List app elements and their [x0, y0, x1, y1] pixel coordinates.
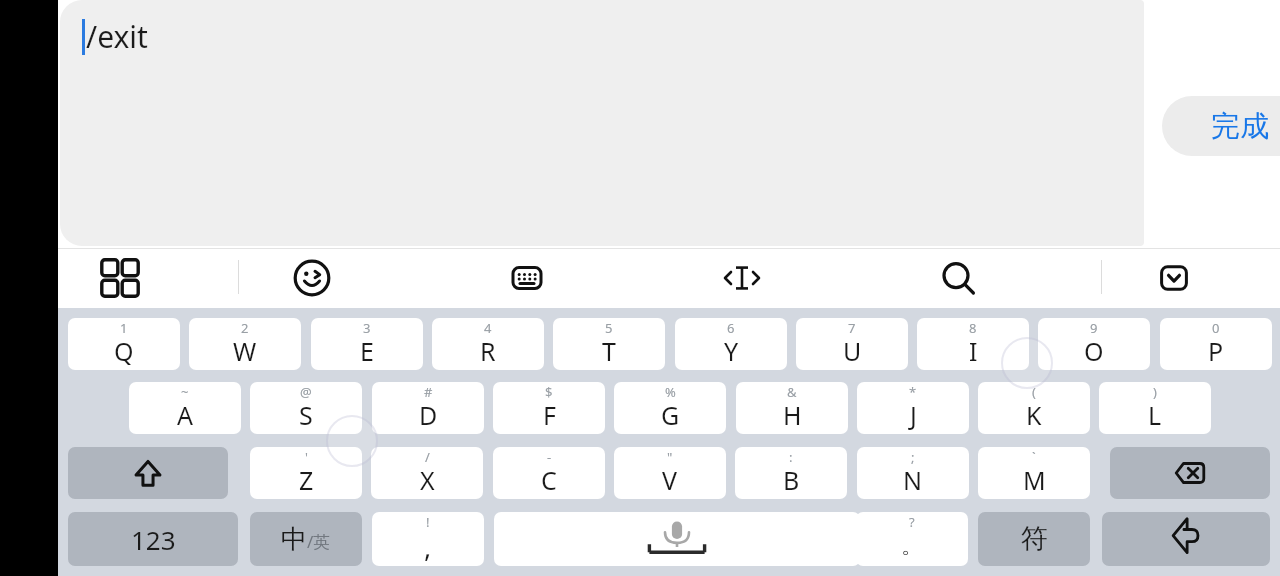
button[interactable]: )	[1099, 382, 1211, 434]
staticText: ;	[911, 448, 915, 466]
staticText: 8	[969, 319, 977, 337]
staticText: B	[783, 463, 800, 497]
button[interactable]: Space, voice input	[494, 512, 860, 566]
staticText: 6	[727, 319, 735, 337]
staticText: !	[426, 513, 430, 531]
staticText: W	[233, 334, 257, 368]
button[interactable]: :	[735, 447, 847, 499]
button[interactable]: 8	[917, 318, 1029, 370]
button[interactable]: 4	[432, 318, 544, 370]
button[interactable]: &	[736, 382, 848, 434]
button[interactable]: Emoji	[288, 254, 336, 302]
staticText: 2	[241, 319, 249, 337]
staticText: &	[787, 383, 797, 401]
button[interactable]: @	[250, 382, 362, 434]
button[interactable]: 7	[796, 318, 908, 370]
button[interactable]: /exit	[60, 0, 1144, 246]
staticText: ,	[424, 528, 432, 565]
staticText: G	[661, 398, 680, 432]
staticText: 5	[605, 319, 613, 337]
button[interactable]: Search	[934, 254, 982, 302]
staticText: U	[843, 334, 862, 368]
button[interactable]: "	[614, 447, 726, 499]
button[interactable]: 6	[675, 318, 787, 370]
staticText: S	[299, 398, 313, 432]
staticText: '	[305, 448, 308, 466]
button[interactable]: ~	[129, 382, 241, 434]
button[interactable]: Enter	[1102, 512, 1270, 566]
staticText: C	[541, 463, 557, 497]
button[interactable]: '	[250, 447, 362, 499]
staticText: V	[662, 463, 678, 497]
staticText: X	[420, 463, 435, 497]
staticText: A	[177, 398, 193, 432]
staticText: "	[667, 448, 673, 466]
button[interactable]: Hide keyboard	[1150, 254, 1198, 302]
button[interactable]: %	[614, 382, 726, 434]
button[interactable]: 3	[311, 318, 423, 370]
staticText: 123	[131, 522, 176, 557]
staticText: D	[419, 398, 438, 432]
staticText: 4	[484, 319, 492, 337]
button[interactable]: Backspace	[1110, 447, 1270, 499]
button[interactable]: Shift	[68, 447, 228, 499]
staticText: *	[909, 383, 917, 401]
staticText: P	[1208, 334, 1224, 368]
staticText: L	[1148, 398, 1162, 432]
button[interactable]: #	[372, 382, 484, 434]
button[interactable]: !	[372, 512, 484, 566]
staticText: O	[1084, 334, 1104, 368]
staticText: ~	[181, 383, 189, 401]
button[interactable]: Grid	[96, 254, 144, 302]
staticText: `	[1032, 448, 1036, 466]
staticText: /exit	[86, 16, 148, 57]
staticText: 1	[120, 319, 128, 337]
staticText: 3	[363, 319, 371, 337]
staticText: 9	[1090, 319, 1098, 337]
staticText: Y	[724, 334, 739, 368]
staticText: (	[1032, 383, 1036, 401]
button[interactable]: ;	[857, 447, 969, 499]
staticText: E	[360, 334, 374, 368]
staticText: /	[425, 448, 430, 466]
staticText: ?	[909, 513, 915, 531]
button[interactable]: ?	[856, 512, 968, 566]
button[interactable]: *	[857, 382, 969, 434]
staticText: Z	[299, 463, 314, 497]
button[interactable]: $	[493, 382, 605, 434]
button[interactable]: 1	[68, 318, 180, 370]
button[interactable]: 123	[68, 512, 238, 566]
staticText: -	[547, 448, 552, 466]
staticText: 完成	[1211, 108, 1269, 145]
staticText: N	[903, 463, 923, 497]
staticText: @	[300, 383, 312, 401]
button[interactable]: Move cursor	[718, 254, 766, 302]
staticText: 中/英	[281, 523, 331, 556]
button[interactable]: 5	[553, 318, 665, 370]
staticText: K	[1026, 398, 1042, 432]
staticText: 0	[1212, 319, 1220, 337]
button[interactable]: 符	[978, 512, 1090, 566]
staticText: F	[543, 398, 556, 432]
button[interactable]: 0	[1160, 318, 1272, 370]
staticText: T	[602, 334, 616, 368]
button[interactable]: `	[978, 447, 1090, 499]
button[interactable]: 9	[1038, 318, 1150, 370]
staticText: 符	[1021, 522, 1048, 556]
button[interactable]: 完成	[1162, 96, 1280, 156]
button[interactable]: 2	[189, 318, 301, 370]
button[interactable]: 中/英	[250, 512, 362, 566]
staticText: Q	[114, 334, 134, 368]
button[interactable]: Keyboard layout	[503, 254, 551, 302]
staticText: I	[969, 334, 978, 368]
staticText: R	[480, 334, 496, 368]
staticText: J	[910, 398, 917, 432]
staticText: #	[424, 383, 433, 401]
staticText: )	[1153, 383, 1157, 401]
staticText: H	[783, 398, 802, 432]
button[interactable]: /	[371, 447, 483, 499]
staticText: 7	[848, 319, 856, 337]
staticText: M	[1023, 463, 1046, 497]
button[interactable]: -	[493, 447, 605, 499]
button[interactable]: (	[978, 382, 1090, 434]
